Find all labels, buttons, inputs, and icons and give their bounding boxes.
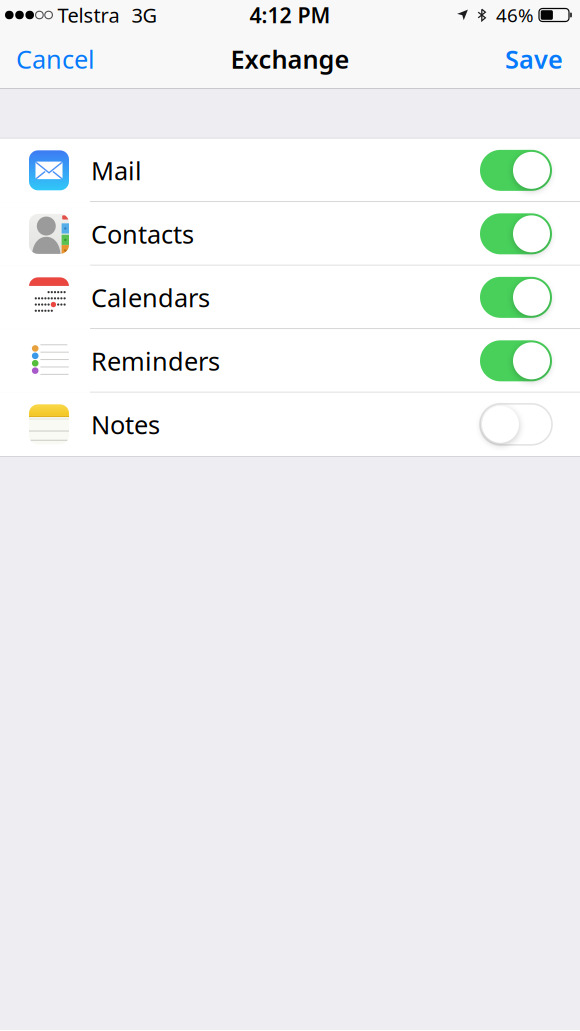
staticText: Calendars (91, 280, 210, 314)
button[interactable]: Cancel (16, 42, 95, 76)
button[interactable]: Reminders (0, 329, 580, 393)
staticText: Telstra (57, 2, 119, 28)
staticText: Exchange (230, 42, 349, 76)
button[interactable]: Calendars (0, 266, 580, 329)
button[interactable]: Contacts (0, 202, 580, 266)
staticText: 4:12 PM (249, 1, 330, 29)
staticText: Notes (91, 407, 160, 441)
staticText: Reminders (91, 344, 220, 378)
staticText: Mail (91, 153, 142, 187)
button[interactable]: Save (505, 42, 563, 76)
staticText: Contacts (91, 217, 194, 251)
staticText: Save (505, 42, 563, 76)
button[interactable]: Mail (0, 139, 580, 202)
staticText: 3G (131, 2, 157, 28)
staticText: Cancel (16, 42, 95, 76)
button[interactable]: Notes (0, 393, 580, 456)
staticText: 46% (496, 3, 534, 27)
